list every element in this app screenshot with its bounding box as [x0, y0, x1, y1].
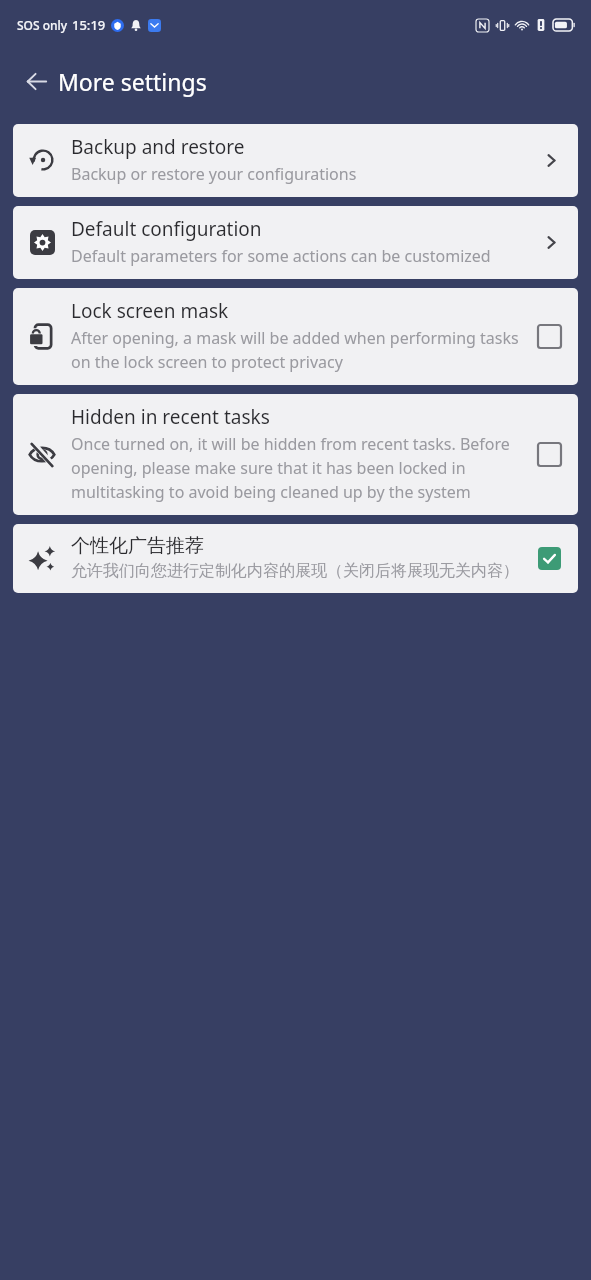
- staticText: Once turned on, it will be hidden from r…: [71, 433, 523, 503]
- button[interactable]: Unchecked: [533, 438, 565, 470]
- button[interactable]: 个性化广告推荐: [13, 524, 578, 593]
- staticText: Hidden in recent tasks: [71, 404, 270, 430]
- button[interactable]: Back: [14, 59, 58, 103]
- button[interactable]: Checked: [533, 542, 565, 574]
- button[interactable]: Lock screen mask: [13, 288, 578, 385]
- staticText: 15:19: [72, 16, 106, 34]
- button[interactable]: Backup and restore: [13, 124, 578, 197]
- staticText: Backup or restore your configurations: [71, 163, 357, 185]
- button[interactable]: Default configuration: [13, 206, 578, 279]
- button[interactable]: Hidden in recent tasks: [13, 394, 578, 515]
- staticText: More settings: [58, 66, 207, 97]
- staticText: After opening, a mask will be added when…: [71, 327, 523, 373]
- staticText: Default parameters for some actions can …: [71, 245, 491, 267]
- staticText: 个性化广告推荐: [71, 534, 204, 558]
- staticText: Lock screen mask: [71, 298, 229, 324]
- staticText: Default configuration: [71, 216, 262, 242]
- staticText: SOS only: [17, 17, 68, 33]
- button[interactable]: Unchecked: [533, 320, 565, 352]
- staticText: 允许我们向您进行定制化内容的展现（关闭后将展现无关内容）: [71, 561, 519, 581]
- staticText: Backup and restore: [71, 134, 245, 160]
